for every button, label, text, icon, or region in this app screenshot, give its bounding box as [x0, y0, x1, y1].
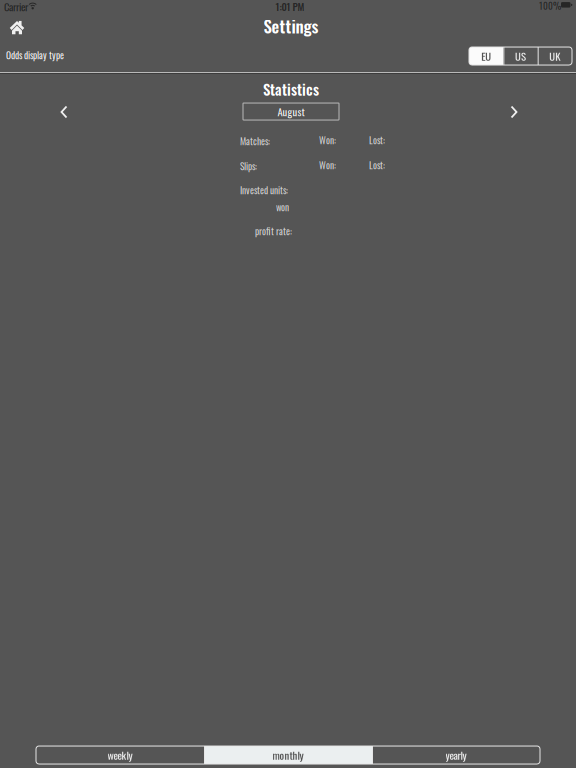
staticText: weekly — [107, 747, 132, 763]
button[interactable]: EU — [469, 47, 503, 65]
button[interactable]: US — [503, 47, 538, 65]
staticText: monthly — [272, 747, 303, 763]
staticText: yearly — [445, 747, 466, 763]
staticText: Carrier — [4, 0, 28, 14]
staticText: 1:01 PM — [275, 0, 304, 14]
button[interactable]: Previous month — [49, 98, 79, 126]
button[interactable]: weekly — [36, 746, 204, 764]
staticText: Invested units: — [240, 183, 288, 197]
staticText: Won: — [319, 133, 336, 147]
button[interactable]: Next month — [499, 98, 529, 126]
staticText: won — [276, 200, 289, 214]
staticText: Settings — [263, 14, 318, 38]
staticText: Odds display type — [6, 48, 64, 62]
staticText: profit rate: — [255, 224, 292, 238]
staticText: UK — [549, 48, 560, 64]
staticText: August — [277, 104, 304, 119]
button[interactable]: August — [243, 103, 339, 120]
staticText: Slips: — [240, 159, 257, 173]
staticText: EU — [481, 48, 491, 64]
staticText: 100% — [539, 0, 561, 12]
staticText: Lost: — [369, 158, 385, 172]
button[interactable]: monthly — [204, 746, 372, 764]
staticText: Statistics — [263, 78, 319, 100]
staticText: Won: — [319, 158, 336, 172]
button[interactable]: UK — [538, 47, 572, 65]
staticText: Matches: — [240, 134, 270, 148]
staticText: Lost: — [369, 133, 385, 147]
button[interactable]: yearly — [372, 746, 540, 764]
staticText: US — [515, 48, 526, 64]
button[interactable]: Home — [0, 14, 34, 40]
